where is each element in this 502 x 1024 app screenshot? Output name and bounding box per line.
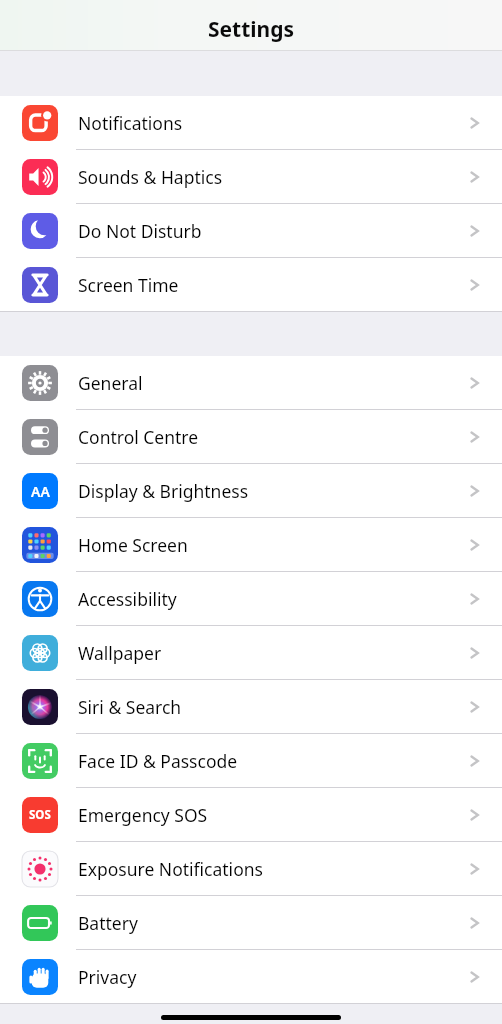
other: Open bbox=[468, 167, 482, 187]
staticText: Siri & Search bbox=[78, 695, 182, 719]
button[interactable]: Battery bbox=[0, 896, 502, 949]
other: Open bbox=[468, 113, 482, 133]
staticText: Privacy bbox=[78, 965, 137, 989]
other: Open bbox=[468, 643, 482, 663]
button[interactable]: Notifications bbox=[0, 96, 502, 149]
staticText: AA bbox=[31, 482, 50, 501]
other: Open bbox=[468, 427, 482, 447]
button[interactable]: Home Screen bbox=[0, 518, 502, 571]
other: Open bbox=[468, 697, 482, 717]
staticText: General bbox=[78, 371, 143, 395]
button[interactable]: General bbox=[0, 356, 502, 409]
staticText: Exposure Notifications bbox=[78, 857, 263, 881]
button[interactable]: Wallpaper bbox=[0, 626, 502, 679]
staticText: Display & Brightness bbox=[78, 479, 249, 503]
button[interactable]: AA bbox=[0, 464, 502, 517]
button[interactable]: Sounds & Haptics bbox=[0, 150, 502, 203]
button[interactable]: Accessibility bbox=[0, 572, 502, 625]
staticText: Accessibility bbox=[78, 587, 177, 611]
staticText: Settings bbox=[208, 15, 295, 44]
other: Open bbox=[468, 913, 482, 933]
button[interactable]: Privacy bbox=[0, 950, 502, 1003]
other: Open bbox=[468, 967, 482, 987]
other: Open bbox=[468, 805, 482, 825]
staticText: Battery bbox=[78, 911, 138, 935]
other: Open bbox=[468, 535, 482, 555]
staticText: Emergency SOS bbox=[78, 803, 208, 827]
button[interactable]: Siri & Search bbox=[0, 680, 502, 733]
button[interactable]: SOS bbox=[0, 788, 502, 841]
staticText: SOS bbox=[29, 807, 51, 823]
button[interactable]: Face ID & Passcode bbox=[0, 734, 502, 787]
staticText: Home Screen bbox=[78, 533, 188, 557]
staticText: Control Centre bbox=[78, 425, 199, 449]
staticText: Face ID & Passcode bbox=[78, 749, 238, 773]
button[interactable]: Screen Time bbox=[0, 258, 502, 311]
button[interactable]: Do Not Disturb bbox=[0, 204, 502, 257]
other: Open bbox=[468, 481, 482, 501]
button[interactable]: Control Centre bbox=[0, 410, 502, 463]
staticText: Wallpaper bbox=[78, 641, 162, 665]
staticText: Sounds & Haptics bbox=[78, 165, 223, 189]
staticText: Do Not Disturb bbox=[78, 219, 202, 243]
other: Open bbox=[468, 221, 482, 241]
button[interactable]: Exposure Notifications bbox=[0, 842, 502, 895]
staticText: Notifications bbox=[78, 111, 183, 135]
other: Open bbox=[468, 859, 482, 879]
other: Open bbox=[468, 373, 482, 393]
other: Open bbox=[468, 275, 482, 295]
staticText: Screen Time bbox=[78, 273, 179, 297]
other: Open bbox=[468, 751, 482, 771]
other: Open bbox=[468, 589, 482, 609]
